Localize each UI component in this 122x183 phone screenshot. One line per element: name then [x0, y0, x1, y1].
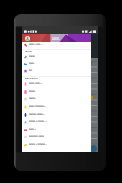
- staticText: TRAVEL: [25, 50, 32, 53]
- button[interactable]: Mobile Accessories: [22, 103, 91, 110]
- staticText: Mobile Phones: [29, 82, 43, 85]
- button[interactable]: Account: [25, 36, 30, 41]
- staticText: Wearable Devices: [29, 113, 45, 116]
- staticText: Service & Accessory: [29, 143, 47, 146]
- staticText: Flights: [29, 55, 36, 58]
- staticText: Mobile Accessories: [29, 105, 47, 108]
- button[interactable]: Flights: [22, 53, 91, 60]
- staticText: Gaming: [29, 128, 37, 131]
- staticText: Laptops: [29, 97, 37, 100]
- button[interactable]: Tablets: [22, 88, 91, 95]
- staticText: LABEL: [52, 37, 60, 41]
- staticText: Search & more: [29, 43, 43, 46]
- staticText: Television Switch: [29, 135, 45, 138]
- button[interactable]: Television Switch: [22, 133, 91, 140]
- button[interactable]: Service & Accessory: [22, 141, 91, 148]
- button[interactable]: Compose: [90, 145, 97, 152]
- button[interactable]: Mobile Phones: [22, 80, 91, 87]
- staticText: Hotels: [29, 62, 35, 65]
- staticText: Network & Antenna: [29, 120, 47, 123]
- button[interactable]: Hotels: [22, 60, 91, 67]
- button[interactable]: Bus: [22, 67, 91, 74]
- button[interactable]: Network & Antenna: [22, 118, 91, 125]
- button[interactable]: Gaming: [22, 126, 91, 133]
- staticText: Bus: [29, 69, 33, 72]
- staticText: Tablets: [29, 90, 36, 93]
- button[interactable]: Laptops: [22, 95, 91, 102]
- button[interactable]: Search & more: [22, 41, 91, 48]
- staticText: ELECTRONICS: [25, 77, 38, 80]
- button[interactable]: Wearable Devices: [22, 111, 91, 118]
